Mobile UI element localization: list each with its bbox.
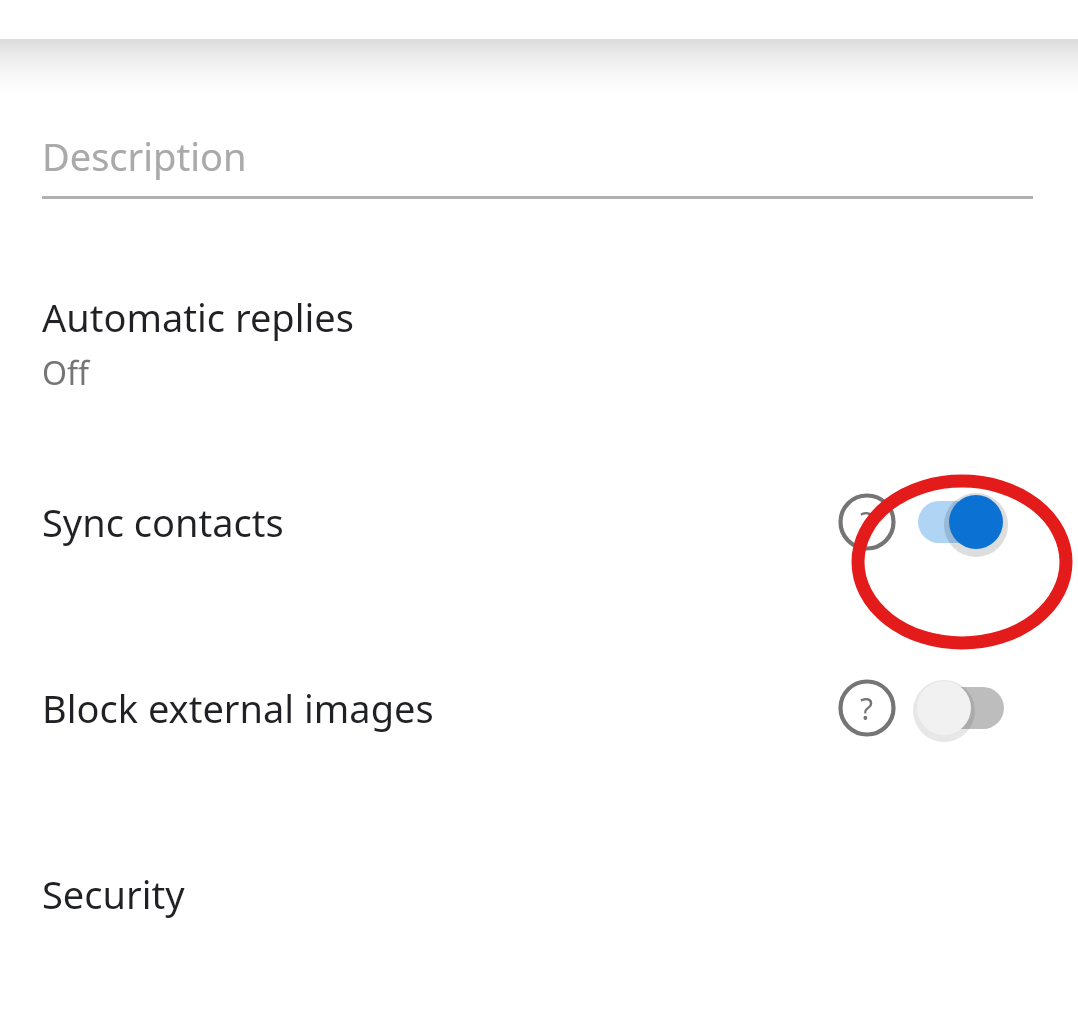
staticText: ?	[860, 502, 874, 543]
staticText: ?	[860, 688, 874, 729]
button[interactable]: Help about Block external images	[838, 679, 896, 737]
staticText: Security	[42, 868, 185, 920]
staticText: Off	[42, 351, 90, 395]
button[interactable]: Sync contacts toggle	[914, 492, 1006, 552]
button[interactable]: Block external images	[0, 675, 1078, 741]
button[interactable]: Sync contacts	[0, 489, 1078, 555]
staticText: Sync contacts	[42, 496, 838, 548]
button[interactable]: Security	[0, 861, 1078, 927]
button[interactable]: Description	[0, 130, 1078, 199]
button[interactable]: Block external images toggle	[914, 678, 1006, 738]
button[interactable]: Automatic replies	[0, 291, 1078, 411]
button[interactable]: Help about Sync contacts	[838, 493, 896, 551]
staticText: Automatic replies	[42, 291, 354, 343]
staticText: Description	[42, 130, 247, 182]
staticText: Block external images	[42, 682, 838, 734]
